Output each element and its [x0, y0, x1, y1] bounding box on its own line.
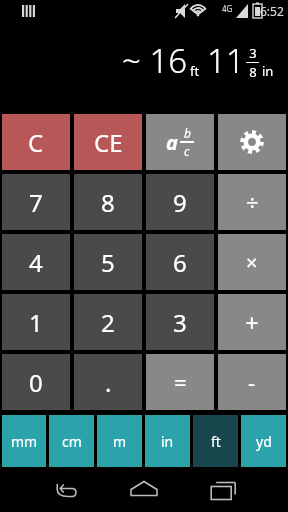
- staticText: 8: [249, 63, 257, 81]
- staticText: +: [245, 306, 259, 339]
- staticText: yd: [256, 432, 272, 451]
- button[interactable]: +: [218, 294, 286, 350]
- staticText: C: [28, 126, 44, 159]
- staticText: a: [166, 129, 178, 156]
- staticText: .: [105, 366, 112, 399]
- staticText: 0: [29, 366, 43, 399]
- button[interactable]: 3: [146, 294, 214, 350]
- button[interactable]: ft: [193, 415, 238, 467]
- staticText: cm: [62, 432, 82, 451]
- staticText: CE: [94, 126, 123, 159]
- staticText: 11: [207, 38, 245, 83]
- staticText: 8: [101, 186, 115, 219]
- staticText: b: [184, 125, 191, 141]
- button[interactable]: -: [218, 354, 286, 410]
- button[interactable]: 6: [146, 234, 214, 290]
- button[interactable]: C: [2, 114, 70, 170]
- button[interactable]: 7: [2, 174, 70, 230]
- button[interactable]: CE: [74, 114, 142, 170]
- staticText: 7: [29, 186, 43, 219]
- staticText: -: [248, 367, 256, 397]
- button[interactable]: 5: [74, 234, 142, 290]
- button[interactable]: 9: [146, 174, 214, 230]
- button[interactable]: =: [146, 354, 214, 410]
- button[interactable]: ÷: [218, 174, 286, 230]
- button[interactable]: Fraction mode: [146, 114, 214, 170]
- staticText: 4G: [222, 3, 233, 14]
- staticText: m: [113, 432, 127, 451]
- staticText: =: [174, 367, 187, 397]
- staticText: ×: [246, 249, 258, 276]
- staticText: c: [184, 143, 190, 159]
- staticText: 5: [101, 246, 115, 279]
- button[interactable]: mm: [2, 415, 46, 467]
- button[interactable]: m: [97, 415, 142, 467]
- staticText: 6:52: [260, 3, 284, 19]
- staticText: in: [262, 62, 274, 80]
- staticText: mm: [11, 432, 38, 451]
- button[interactable]: in: [145, 415, 190, 467]
- button[interactable]: 0: [2, 354, 70, 410]
- button[interactable]: yd: [241, 415, 286, 467]
- staticText: ft: [211, 432, 221, 451]
- button[interactable]: ×: [218, 234, 286, 290]
- staticText: 3: [173, 306, 187, 339]
- staticText: ÷: [246, 187, 259, 217]
- staticText: 1: [29, 306, 43, 339]
- button[interactable]: Settings: [218, 114, 286, 170]
- staticText: ~ 16: [122, 38, 188, 83]
- button[interactable]: 8: [74, 174, 142, 230]
- staticText: 9: [173, 186, 187, 219]
- staticText: ft: [190, 62, 200, 80]
- staticText: 2: [101, 306, 115, 339]
- staticText: in: [161, 432, 174, 451]
- staticText: 4: [29, 246, 43, 279]
- button[interactable]: .: [74, 354, 142, 410]
- button[interactable]: 2: [74, 294, 142, 350]
- button[interactable]: 1: [2, 294, 70, 350]
- staticText: 3: [249, 44, 257, 62]
- button[interactable]: cm: [49, 415, 94, 467]
- button[interactable]: 4: [2, 234, 70, 290]
- staticText: 6: [173, 246, 187, 279]
